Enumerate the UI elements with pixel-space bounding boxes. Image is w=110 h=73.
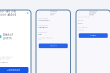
staticText: Continue (6, 68, 20, 72)
button[interactable]: Back (78, 10, 81, 15)
staticText: ‹ (39, 11, 40, 15)
staticText: ✕ (27, 11, 29, 14)
staticText: Ipsum (78, 22, 82, 24)
staticText: LOREM IPSUM (38, 27, 47, 28)
button[interactable]: Continue (0, 67, 28, 73)
staticText: EXPIRY DATE (38, 31, 47, 33)
staticText: Lorem ipsum (0, 61, 7, 63)
staticText: Bank of Lorem (3, 33, 13, 40)
button[interactable]: Back (38, 10, 41, 15)
staticText: ‹ (79, 11, 80, 15)
staticText: Lorem ipsum (78, 27, 87, 28)
staticText: Add card (50, 45, 57, 47)
staticText: CARDHOLDER (38, 24, 48, 26)
staticText: Add a new payment card (50, 10, 57, 16)
staticText: 09 / 27 (38, 34, 42, 35)
staticText: Your card has been added (0, 9, 16, 17)
staticText: Lorem ipsum dolor sit amet consectetur (0, 56, 12, 60)
button[interactable]: Continue (79, 33, 108, 38)
button[interactable]: Close (27, 11, 29, 14)
staticText: 1234 5678 9012 (38, 20, 50, 21)
staticText: CARD NUMBER (38, 17, 48, 19)
button[interactable]: Add card (39, 43, 68, 48)
staticText: Your card has been added (89, 10, 97, 16)
staticText: Continue (90, 35, 96, 36)
staticText: Lorem (78, 19, 83, 21)
staticText: Lorem ipsum dolor sit amet (38, 37, 52, 40)
